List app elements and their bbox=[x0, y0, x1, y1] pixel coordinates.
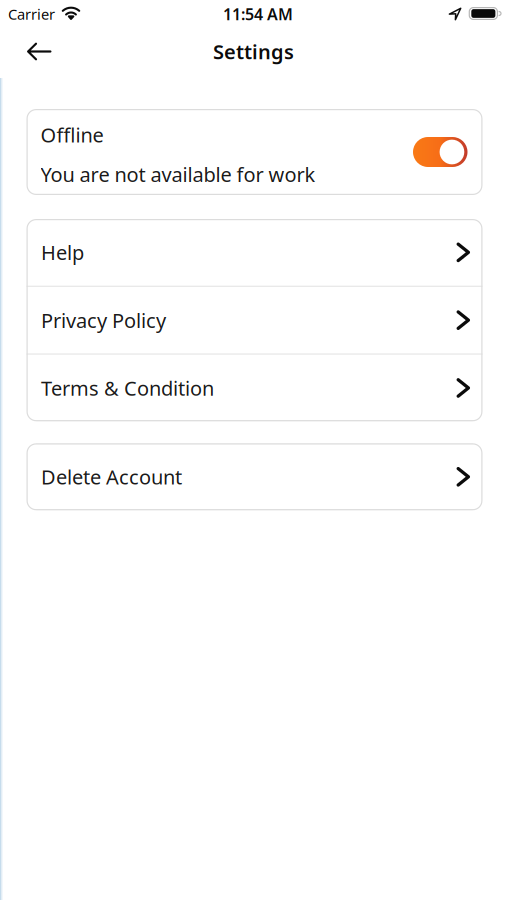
staticText: Privacy Policy bbox=[41, 307, 166, 333]
button[interactable]: Availability toggle bbox=[413, 137, 467, 167]
button[interactable]: Help bbox=[26, 219, 482, 286]
staticText: Settings bbox=[213, 38, 294, 65]
button[interactable]: Privacy Policy bbox=[26, 287, 482, 353]
staticText: Carrier bbox=[8, 4, 55, 24]
staticText: Terms & Condition bbox=[41, 375, 214, 401]
button[interactable]: Delete Account bbox=[26, 443, 482, 510]
staticText: Delete Account bbox=[41, 463, 182, 490]
staticText: Help bbox=[41, 239, 84, 266]
button[interactable]: Back bbox=[0, 30, 67, 73]
staticText: 11:54 AM bbox=[223, 3, 293, 25]
staticText: You are not available for work bbox=[40, 161, 315, 188]
staticText: Offline bbox=[40, 121, 103, 148]
button[interactable]: Terms & Condition bbox=[26, 355, 482, 421]
